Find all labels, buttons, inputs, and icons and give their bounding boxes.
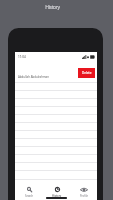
staticText: History	[38, 4, 67, 11]
staticText: Search	[25, 194, 34, 198]
button[interactable]: Profile	[70, 179, 98, 198]
button[interactable]: Delete	[78, 68, 95, 78]
button[interactable]: Search	[15, 179, 43, 198]
staticText: History	[52, 194, 62, 198]
staticText: Profile	[80, 194, 88, 198]
staticText: 11:04	[18, 55, 26, 59]
staticText: Abdullah Abdulrahman	[18, 75, 49, 79]
button[interactable]: History	[43, 179, 71, 198]
staticText: Delete	[82, 71, 92, 75]
